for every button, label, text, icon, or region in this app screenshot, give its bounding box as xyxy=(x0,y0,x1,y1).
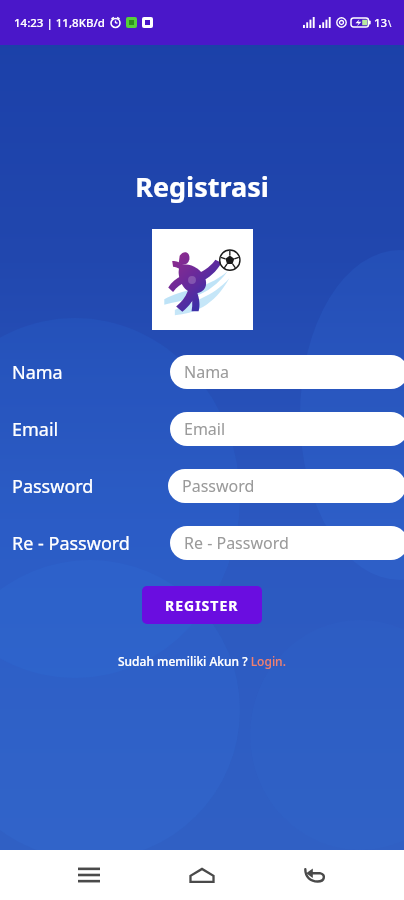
staticText: Re - Password xyxy=(184,532,289,554)
staticText: Nama xyxy=(12,360,63,385)
button[interactable]: Home xyxy=(178,851,226,899)
button[interactable]: Nama xyxy=(170,355,404,389)
button[interactable]: Back xyxy=(291,851,339,899)
staticText: 14:23 | 11,8KB/d xyxy=(14,15,105,31)
staticText: Re - Password xyxy=(12,531,130,556)
button[interactable]: Sudah memiliki Akun ? Login. xyxy=(110,650,294,672)
staticText: Sudah memiliki Akun ? Login. xyxy=(118,653,286,669)
button[interactable]: Recent apps xyxy=(65,851,113,899)
staticText: Email xyxy=(184,418,226,440)
button[interactable]: REGISTER xyxy=(142,586,262,624)
staticText: Email xyxy=(12,417,59,442)
staticText: Password xyxy=(12,474,94,499)
staticText: Password xyxy=(182,475,255,497)
staticText: 13 xyxy=(374,15,388,31)
staticText: \ xyxy=(388,17,392,29)
button[interactable]: Re - Password xyxy=(170,526,404,560)
button[interactable]: Email xyxy=(170,412,404,446)
staticText: REGISTER xyxy=(165,596,239,615)
button[interactable]: Password xyxy=(168,469,404,503)
staticText: Registrasi xyxy=(0,168,404,205)
staticText: Nama xyxy=(184,361,230,383)
